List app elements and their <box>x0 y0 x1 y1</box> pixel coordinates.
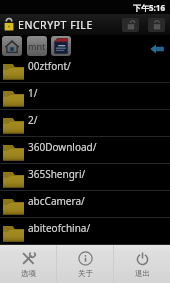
button[interactable]: Lock toggle <box>122 18 139 32</box>
button[interactable]: 365Shengri/ <box>0 164 170 191</box>
button[interactable]: 关于 <box>57 245 113 283</box>
staticText: abiteofchina/ <box>28 221 91 235</box>
button[interactable]: 2/ <box>0 110 170 137</box>
staticText: abcCamera/ <box>28 194 85 208</box>
staticText: 360Download/ <box>28 140 97 154</box>
button[interactable] <box>51 36 71 56</box>
button[interactable] <box>2 36 22 56</box>
staticText: 下午5:16 <box>133 2 165 13</box>
button[interactable]: mnt <box>27 36 47 56</box>
staticText: mnt <box>28 40 46 52</box>
button[interactable]: abiteofchina/ <box>0 218 170 245</box>
button[interactable]: 退出 <box>114 245 170 283</box>
button[interactable]: 00ztfont/ <box>0 56 170 83</box>
staticText: 2/ <box>28 113 38 127</box>
button[interactable]: Lock toggle <box>148 18 165 32</box>
staticText: ENCRYPT FILE <box>18 18 93 32</box>
button[interactable]: Back <box>147 35 167 56</box>
staticText: 365Shengri/ <box>28 167 86 181</box>
button[interactable]: abcCamera/ <box>0 191 170 218</box>
staticText: 退出 <box>135 269 150 278</box>
staticText: 关于 <box>78 269 93 278</box>
button[interactable]: 1/ <box>0 83 170 110</box>
staticText: 1/ <box>28 86 38 100</box>
staticText: 00ztfont/ <box>28 59 71 73</box>
button[interactable]: 选项 <box>0 245 56 283</box>
staticText: 选项 <box>21 269 36 278</box>
button[interactable]: 360Download/ <box>0 137 170 164</box>
